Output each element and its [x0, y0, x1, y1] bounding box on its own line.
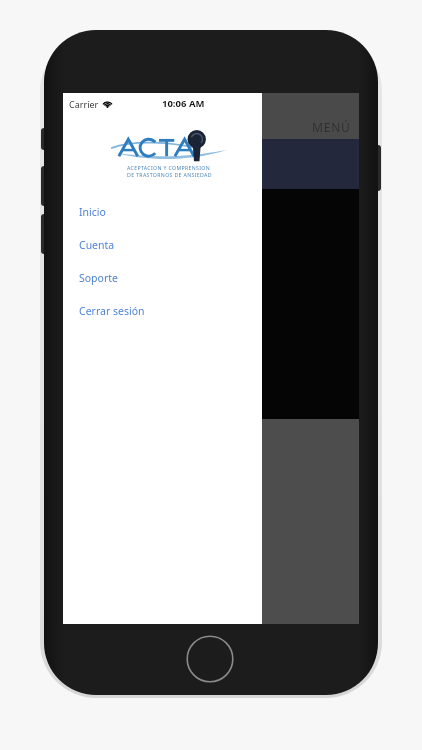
staticText: Cerrar sesión: [79, 304, 145, 318]
staticText: ACEPTACION Y COMPRENSION: [127, 164, 211, 171]
staticText: Cuenta: [79, 238, 115, 252]
button[interactable]: Soporte: [63, 261, 262, 294]
button[interactable]: Cuenta: [63, 228, 262, 261]
button[interactable]: Cerrar sesión: [63, 294, 262, 327]
staticText: MENÚ: [312, 119, 351, 135]
staticText: Soporte: [79, 271, 118, 285]
button[interactable]: Menú: [63, 114, 359, 139]
button[interactable]: Inicio: [63, 195, 262, 228]
staticText: Carrier: [69, 98, 99, 110]
staticText: DE TRASTORNOS DE ANSIEDAD: [127, 171, 212, 178]
staticText: 10:06 AM: [162, 97, 205, 110]
staticText: Inicio: [79, 205, 106, 219]
